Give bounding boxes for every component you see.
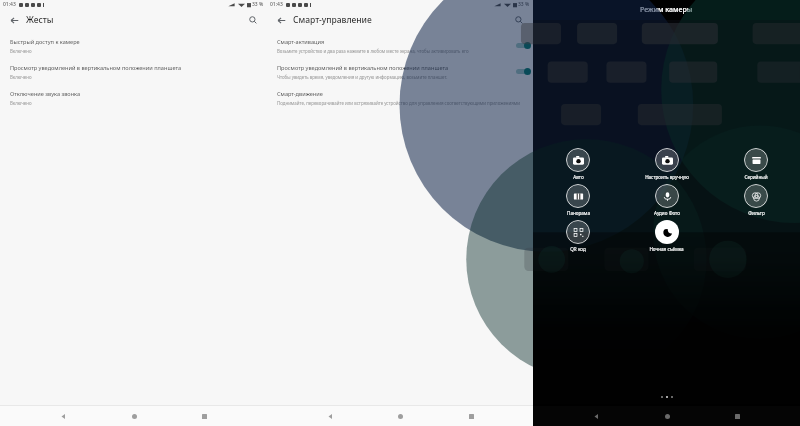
button[interactable]: Просмотр уведомлений в вертикальном поло… [0, 59, 267, 85]
button[interactable]: Ночная съёмка [647, 220, 686, 252]
staticText: Просмотр уведомлений в вертикальном поло… [277, 64, 449, 72]
button[interactable]: QR код [564, 220, 592, 252]
staticText: Смарт-активация [277, 38, 325, 46]
staticText: Ночная съёмка [649, 246, 684, 252]
button[interactable]: Назад [6, 12, 22, 28]
staticText: QR код [570, 246, 586, 252]
button[interactable]: Обзор [196, 408, 212, 424]
staticText: Панорама [567, 210, 590, 216]
staticText: Жесты [26, 14, 54, 26]
button[interactable]: Фильтр [742, 184, 770, 216]
staticText: 33 % [252, 1, 264, 8]
staticText: Поднимайте, переворачивайте или встряхив… [277, 100, 520, 106]
button[interactable] [513, 65, 533, 77]
button[interactable]: Поиск [511, 12, 527, 28]
staticText: Отключение звука звонка [10, 90, 81, 98]
staticText: Аудио Фото [654, 210, 680, 216]
button[interactable]: Аудио Фото [652, 184, 682, 216]
staticText: Включено [10, 74, 32, 80]
button[interactable]: Назад [273, 12, 289, 28]
button[interactable]: Назад [55, 408, 71, 424]
button[interactable]: Главный экран [659, 408, 675, 424]
staticText: 01:43 [270, 1, 283, 8]
button[interactable]: Обзор [729, 408, 745, 424]
staticText: Чтобы увидеть время, уведомления и другу… [277, 74, 448, 80]
staticText: Смарт-управление [293, 14, 372, 26]
button[interactable]: Панорама [564, 184, 592, 216]
button[interactable]: Поиск [245, 12, 261, 28]
staticText: Включено [10, 100, 32, 106]
button[interactable]: Авто [564, 148, 592, 180]
button[interactable]: Серийный [742, 148, 770, 180]
button[interactable]: Настроить вручную [643, 148, 691, 180]
staticText: Возьмите устройство и два раза нажмите в… [277, 48, 469, 54]
button[interactable]: Смарт-активация [267, 33, 533, 59]
button[interactable]: Быстрый доступ к камере [0, 33, 267, 59]
staticText: 01:43 [3, 1, 16, 8]
staticText: 33 % [518, 1, 530, 8]
staticText: Просмотр уведомлений в вертикальном поло… [10, 64, 182, 72]
button[interactable]: Обзор [463, 408, 479, 424]
staticText: Быстрый доступ к камере [10, 38, 80, 46]
staticText: Включено [10, 48, 32, 54]
button[interactable]: Просмотр уведомлений в вертикальном поло… [267, 59, 533, 85]
staticText: Режим камеры [640, 5, 693, 15]
button[interactable]: Главный экран [126, 408, 142, 424]
button[interactable]: Смарт-движение [267, 85, 533, 111]
button[interactable]: Назад [322, 408, 338, 424]
staticText: Настроить вручную [645, 174, 689, 180]
button[interactable] [513, 39, 533, 51]
button[interactable]: Назад [588, 408, 604, 424]
button[interactable]: Отключение звука звонка [0, 85, 267, 111]
staticText: Смарт-движение [277, 90, 323, 98]
staticText: Серийный [744, 174, 768, 180]
button[interactable]: Главный экран [392, 408, 408, 424]
staticText: Авто [573, 174, 584, 180]
staticText: Фильтр [748, 210, 765, 216]
